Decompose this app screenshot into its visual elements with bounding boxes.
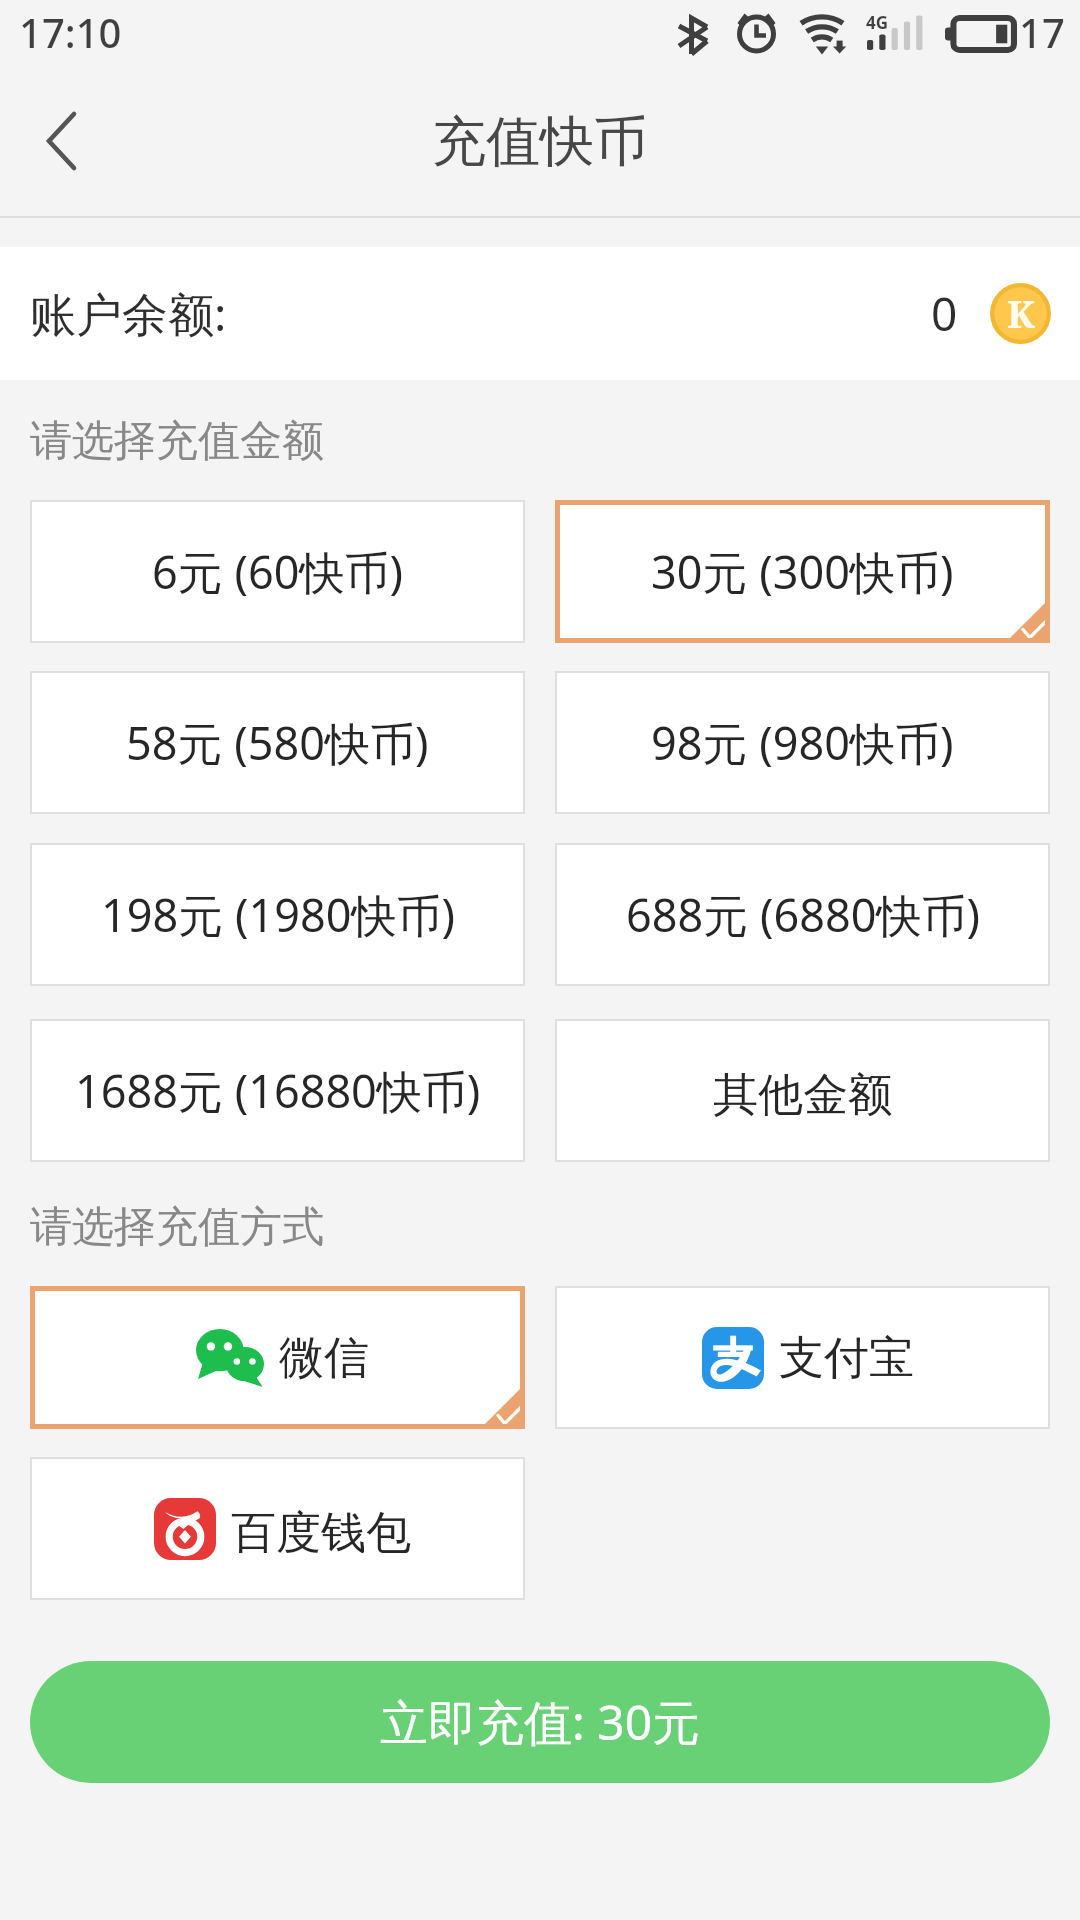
staticText: 支付宝: [779, 1330, 914, 1387]
staticText: 其他金额: [713, 1067, 893, 1124]
button[interactable]: 微信: [30, 1286, 525, 1429]
button[interactable]: 立即充值: 30元: [30, 1661, 1050, 1783]
staticText: 30元 (300快币): [651, 541, 954, 602]
staticText: 198元 (1980快币): [101, 884, 455, 945]
staticText: 立即充值: 30元: [380, 1689, 701, 1755]
button[interactable]: 其他金额: [555, 1019, 1050, 1162]
button[interactable]: 支付宝: [555, 1286, 1050, 1429]
staticText: 17:10: [19, 5, 122, 59]
button[interactable]: 1688元 (16880快币): [30, 1019, 525, 1162]
button[interactable]: 30元 (300快币): [555, 500, 1050, 643]
staticText: 58元 (580快币): [126, 712, 429, 773]
staticText: 98元 (980快币): [651, 712, 954, 773]
staticText: 0: [931, 282, 958, 345]
button[interactable]: 98元 (980快币): [555, 671, 1050, 814]
staticText: 1688元 (16880快币): [75, 1060, 481, 1121]
button[interactable]: Back: [1, 81, 121, 201]
staticText: 6元 (60快币): [152, 541, 403, 602]
button[interactable]: 198元 (1980快币): [30, 843, 525, 986]
button[interactable]: 688元 (6880快币): [555, 843, 1050, 986]
button[interactable]: 6元 (60快币): [30, 500, 525, 643]
button[interactable]: 百度钱包: [30, 1457, 525, 1600]
staticText: 17: [1019, 5, 1065, 59]
staticText: 688元 (6880快币): [626, 884, 980, 945]
staticText: 账户余额:: [30, 282, 227, 345]
staticText: 微信: [279, 1330, 369, 1387]
staticText: 百度钱包: [231, 1505, 411, 1562]
button[interactable]: 58元 (580快币): [30, 671, 525, 814]
staticText: 请选择充值方式: [30, 1201, 324, 1254]
staticText: 充值快币: [432, 108, 648, 176]
staticText: K: [1007, 287, 1035, 339]
staticText: 4G: [866, 11, 889, 34]
staticText: 请选择充值金额: [30, 415, 324, 468]
